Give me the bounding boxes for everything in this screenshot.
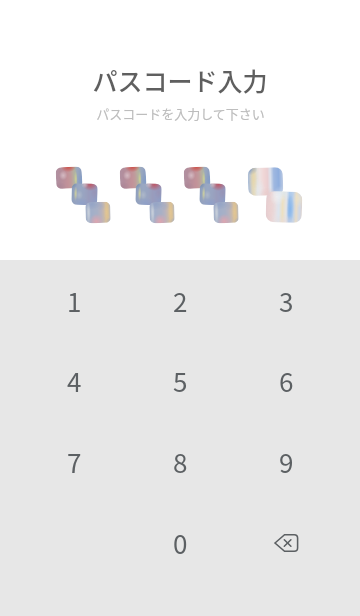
button[interactable]: 4	[21, 341, 127, 421]
button[interactable]: 0	[127, 503, 233, 583]
staticText: パスコード入力	[92, 62, 268, 98]
staticText: 7	[67, 443, 82, 481]
staticText: 5	[173, 362, 188, 400]
staticText: 4	[67, 362, 82, 400]
staticText: 2	[173, 282, 188, 320]
button[interactable]: 3	[233, 261, 339, 341]
staticText: 9	[279, 443, 294, 481]
staticText: 6	[279, 362, 294, 400]
button[interactable]: 8	[127, 422, 233, 502]
button[interactable]: Backspace	[233, 503, 339, 583]
staticText: 1	[67, 282, 82, 320]
button[interactable]: 2	[127, 261, 233, 341]
staticText: 0	[173, 524, 188, 562]
button[interactable]: 1	[21, 261, 127, 341]
staticText: 3	[279, 282, 294, 320]
staticText: 8	[173, 443, 188, 481]
button[interactable]: 7	[21, 422, 127, 502]
button[interactable]: 9	[233, 422, 339, 502]
button[interactable]: 5	[127, 341, 233, 421]
button[interactable]: 6	[233, 341, 339, 421]
staticText: パスコードを入力して下さい	[96, 104, 265, 123]
